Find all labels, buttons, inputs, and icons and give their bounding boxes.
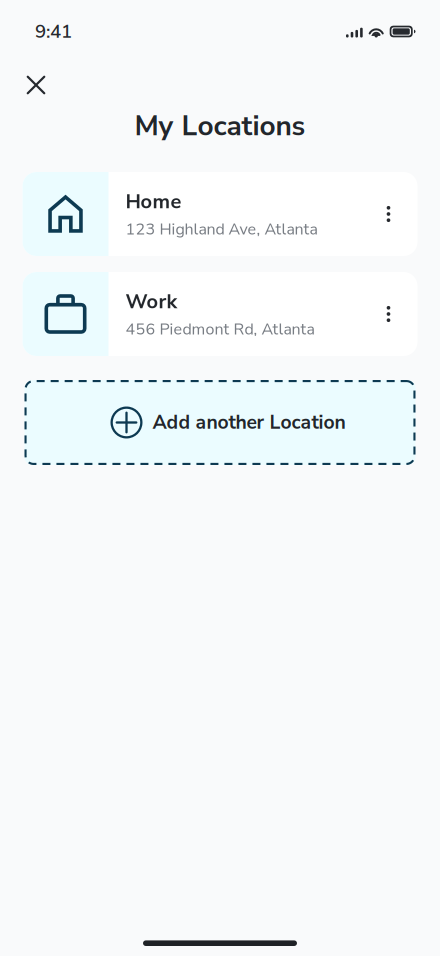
button[interactable]: Add another Location bbox=[24, 380, 415, 465]
staticText: 9:41 bbox=[35, 19, 72, 44]
button[interactable]: Work, 456 Piedmont Rd, Atlanta bbox=[22, 272, 417, 356]
staticText: Home bbox=[125, 188, 181, 215]
button[interactable]: Home, 123 Highland Ave, Atlanta bbox=[22, 172, 417, 256]
staticText: My Locations bbox=[134, 107, 305, 145]
staticText: 123 Highland Ave, Atlanta bbox=[125, 218, 317, 240]
staticText: Work bbox=[125, 288, 177, 315]
button[interactable]: Close bbox=[14, 63, 58, 107]
staticText: Add another Location bbox=[152, 409, 345, 436]
staticText: 456 Piedmont Rd, Atlanta bbox=[125, 318, 314, 340]
